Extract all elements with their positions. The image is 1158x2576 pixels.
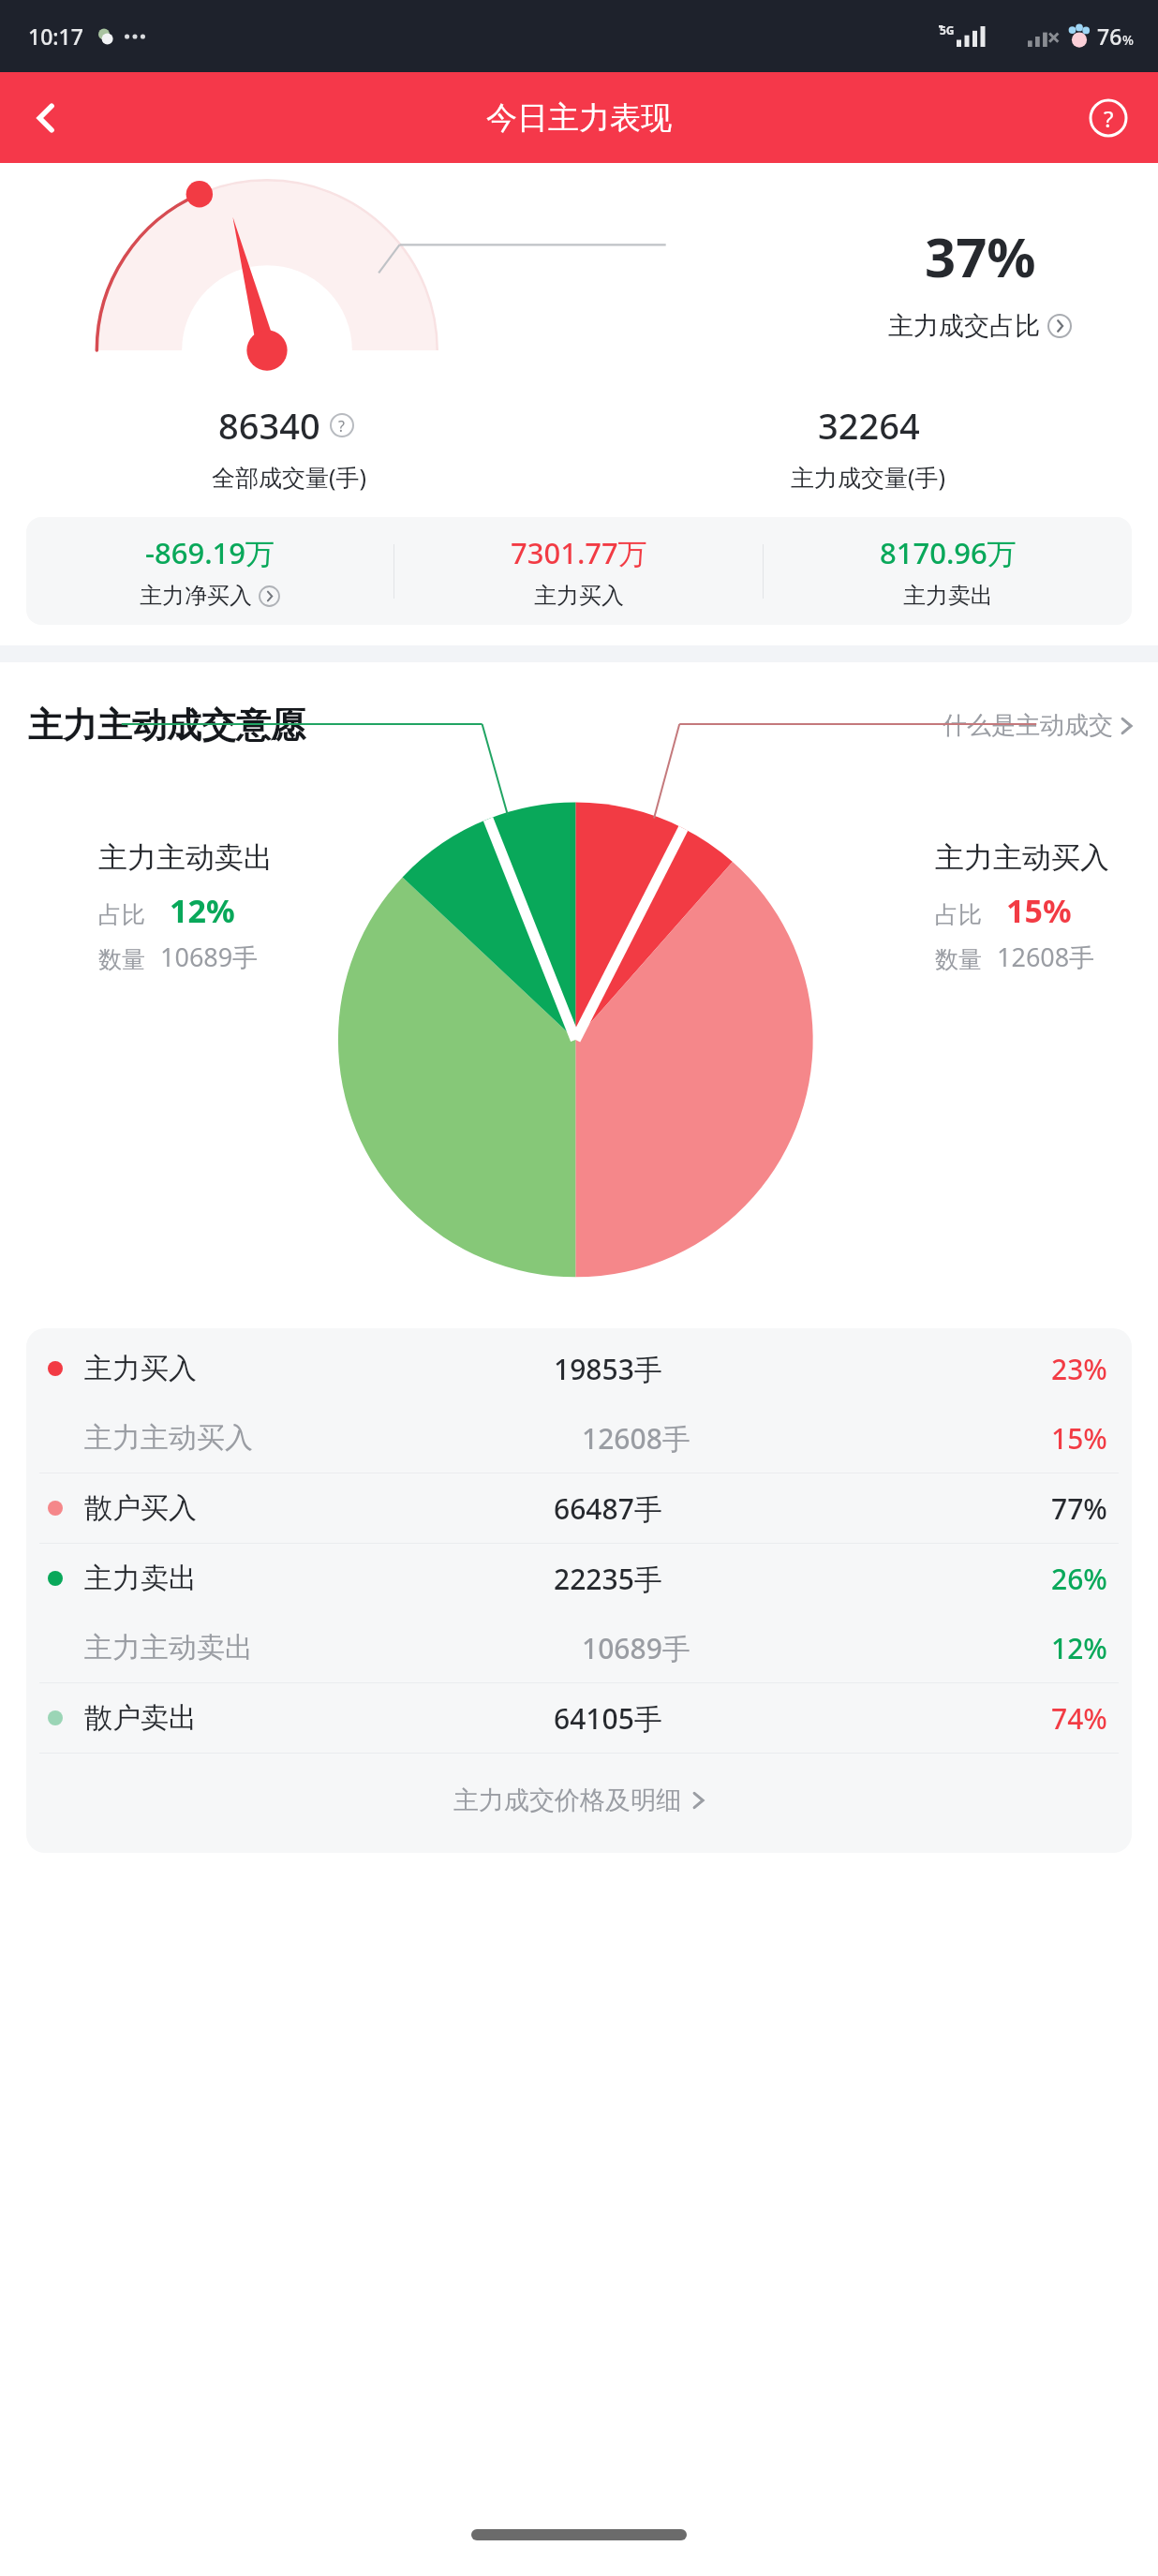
staticText: 主力成交占比 (888, 310, 1040, 342)
staticText: 7301.77万 (511, 533, 647, 572)
staticText: 19853手 (554, 1350, 662, 1388)
button[interactable]: 8170.96万 (764, 517, 1132, 625)
staticText: 什么是主动成交 (943, 710, 1113, 741)
staticText: 23% (1051, 1350, 1107, 1388)
button[interactable]: Back (13, 85, 79, 151)
staticText: 主力主动买入 (935, 839, 1109, 876)
staticText: 5G (940, 22, 955, 37)
staticText: % (1122, 31, 1134, 49)
button[interactable]: 主力主动买入 (26, 1403, 1132, 1473)
staticText: -869.19万 (145, 533, 275, 572)
button[interactable]: -869.19万 (26, 517, 393, 625)
staticText: 76 (1097, 22, 1122, 51)
staticText: 10:17 (28, 22, 83, 51)
staticText: 主力主动卖出 (98, 839, 273, 876)
staticText: 12% (1051, 1629, 1107, 1667)
staticText: 8170.96万 (880, 533, 1017, 572)
staticText: 66487手 (554, 1489, 662, 1528)
staticText: 主力净买入 (140, 582, 252, 610)
button[interactable]: 散户买入 (26, 1473, 1132, 1543)
staticText: 26% (1051, 1560, 1107, 1598)
button[interactable]: 主力成交价格及明细 (26, 1754, 1132, 1847)
staticText: 主力卖出 (84, 1561, 197, 1596)
staticText: 12608手 (997, 940, 1095, 974)
staticText: ? (1104, 103, 1114, 134)
staticText: 37% (925, 219, 1036, 293)
staticText: 10689手 (160, 940, 259, 974)
button[interactable]: 散户卖出 (26, 1683, 1132, 1753)
staticText: 全部成交量(手) (212, 461, 367, 493)
staticText: 77% (1051, 1489, 1107, 1528)
staticText: 86340 (218, 401, 320, 450)
staticText: 主力主动买入 (84, 1420, 253, 1456)
button[interactable]: 86340 (0, 401, 579, 493)
staticText: 主力成交量(手) (791, 461, 946, 493)
button[interactable]: 主力卖出 (26, 1544, 1132, 1613)
staticText: 15% (1006, 889, 1072, 932)
staticText: 主力主动卖出 (84, 1630, 253, 1666)
staticText: 主力主动成交意愿 (28, 703, 305, 748)
button[interactable]: 主力成交占比 (888, 310, 1072, 342)
staticText: 12% (170, 889, 235, 932)
staticText: 主力买入 (534, 582, 624, 610)
staticText: 数量 (98, 945, 145, 974)
button[interactable]: 主力买入 (26, 1334, 1132, 1403)
staticText: 数量 (935, 945, 982, 974)
staticText: 10689手 (582, 1629, 690, 1667)
staticText: 12608手 (582, 1419, 690, 1458)
staticText: 74% (1051, 1699, 1107, 1738)
staticText: 散户买入 (84, 1490, 197, 1526)
staticText: 22235手 (554, 1560, 662, 1598)
button[interactable]: Help (1076, 85, 1141, 151)
staticText: 占比 (98, 900, 145, 929)
staticText: 主力买入 (84, 1351, 197, 1386)
button[interactable]: 什么是主动成交 (943, 710, 1134, 741)
staticText: 今日主力表现 (486, 98, 672, 138)
staticText: 占比 (935, 900, 982, 929)
staticText: 主力卖出 (903, 582, 993, 610)
staticText: ? (338, 416, 345, 437)
button[interactable]: 7301.77万 (394, 517, 763, 625)
staticText: 32264 (818, 401, 920, 450)
staticText: 15% (1051, 1419, 1107, 1458)
button[interactable]: 32264 (579, 401, 1158, 493)
staticText: 散户卖出 (84, 1700, 197, 1736)
button[interactable]: 主力主动卖出 (26, 1613, 1132, 1682)
staticText: 主力成交价格及明细 (453, 1784, 681, 1816)
staticText: 64105手 (554, 1699, 662, 1738)
